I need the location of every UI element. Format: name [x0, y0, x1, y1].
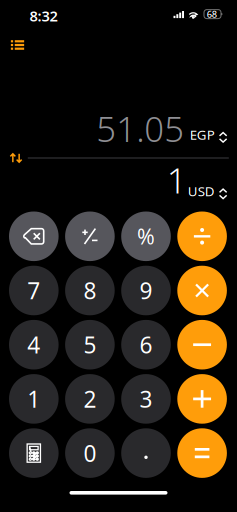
- button[interactable]: Delete: [9, 211, 59, 261]
- button[interactable]: Toggle sign: [65, 211, 115, 261]
- button[interactable]: History: [4, 32, 31, 58]
- button[interactable]: 4: [9, 320, 59, 369]
- button[interactable]: 1: [9, 374, 59, 424]
- staticText: 3: [139, 384, 152, 414]
- button[interactable]: Divide: [177, 211, 227, 261]
- button[interactable]: 6: [121, 320, 171, 369]
- button[interactable]: Decimal point: [121, 428, 171, 478]
- staticText: 4: [27, 330, 40, 360]
- button[interactable]: EGP: [184, 128, 237, 150]
- button[interactable]: 0: [65, 428, 115, 478]
- button[interactable]: 3: [121, 374, 171, 424]
- staticText: 5: [83, 330, 96, 360]
- staticText: 6: [139, 330, 152, 360]
- button[interactable]: %: [121, 211, 171, 261]
- staticText: USD: [188, 182, 215, 200]
- button[interactable]: Equals: [177, 428, 227, 478]
- staticText: 1: [27, 384, 40, 414]
- staticText: 8: [83, 275, 96, 305]
- staticText: 8:32: [29, 6, 57, 25]
- staticText: 51.05: [96, 105, 184, 151]
- button[interactable]: 9: [121, 266, 171, 315]
- staticText: 0: [83, 438, 96, 468]
- staticText: 68: [207, 8, 217, 20]
- button[interactable]: Subtract: [177, 320, 227, 369]
- button[interactable]: Swap currencies: [5, 148, 27, 168]
- staticText: EGP: [190, 126, 215, 143]
- button[interactable]: USD: [178, 185, 237, 206]
- button[interactable]: 2: [65, 374, 115, 424]
- staticText: 7: [27, 275, 40, 305]
- button[interactable]: Add: [177, 374, 227, 424]
- staticText: 1: [167, 157, 187, 203]
- button[interactable]: 7: [9, 266, 59, 315]
- staticText: %: [137, 222, 155, 250]
- staticText: 2: [83, 384, 96, 414]
- button[interactable]: 5: [65, 320, 115, 369]
- button[interactable]: Calculator: [9, 428, 59, 478]
- staticText: 9: [139, 275, 152, 305]
- button[interactable]: 8: [65, 266, 115, 315]
- button[interactable]: Multiply: [177, 266, 227, 315]
